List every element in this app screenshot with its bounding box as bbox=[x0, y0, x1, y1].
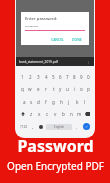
button[interactable]: i bbox=[71, 84, 78, 93]
staticText: h bbox=[60, 99, 63, 105]
staticText: Open Encrypted PDF bbox=[7, 159, 104, 173]
button[interactable]: a bbox=[21, 97, 28, 106]
staticText: m bbox=[77, 111, 82, 117]
staticText: 5 bbox=[52, 74, 55, 80]
staticText: l bbox=[84, 99, 86, 105]
staticText: Enter password: bbox=[25, 16, 58, 22]
button[interactable]: . bbox=[73, 122, 81, 131]
staticText: 9 bbox=[80, 74, 83, 80]
staticText: ?123 bbox=[20, 124, 28, 129]
button[interactable]: 8 bbox=[71, 72, 78, 81]
button[interactable]: n bbox=[67, 109, 75, 118]
button[interactable]: DONE bbox=[70, 36, 84, 43]
button[interactable]: Backspace bbox=[83, 109, 92, 118]
button[interactable]: More options bbox=[85, 59, 91, 65]
staticText: , bbox=[32, 124, 34, 130]
button[interactable]: 0 bbox=[85, 72, 92, 81]
staticText: 3 bbox=[37, 74, 40, 80]
button[interactable]: f bbox=[42, 97, 49, 106]
staticText: f bbox=[45, 99, 47, 105]
button[interactable]: CANCEL bbox=[49, 36, 66, 43]
button[interactable]: 4 bbox=[42, 72, 50, 81]
button[interactable]: 1 bbox=[18, 72, 26, 81]
staticText: x bbox=[38, 111, 41, 117]
staticText: e bbox=[37, 86, 40, 92]
staticText: 7 bbox=[66, 74, 69, 80]
button[interactable]: o bbox=[78, 84, 85, 93]
button[interactable]: v bbox=[51, 109, 59, 118]
button[interactable]: w bbox=[26, 84, 34, 93]
staticText: b bbox=[62, 111, 65, 117]
button[interactable]: z bbox=[27, 109, 35, 118]
button[interactable]: s bbox=[28, 97, 35, 106]
button[interactable]: 6 bbox=[57, 72, 64, 81]
staticText: 4 bbox=[45, 74, 48, 80]
staticText: CANCEL bbox=[51, 37, 64, 42]
button[interactable]: 9 bbox=[78, 72, 85, 81]
button[interactable]: Enter bbox=[81, 122, 92, 131]
staticText: 6 bbox=[59, 74, 62, 80]
button[interactable]: d bbox=[35, 97, 42, 106]
staticText: c bbox=[46, 111, 49, 117]
staticText: u bbox=[66, 86, 69, 92]
button[interactable]: t bbox=[50, 84, 57, 93]
staticText: a bbox=[23, 99, 26, 105]
staticText: . bbox=[76, 124, 78, 130]
button[interactable]: q bbox=[18, 84, 26, 93]
button[interactable]: b bbox=[59, 109, 67, 118]
staticText: d bbox=[37, 99, 40, 105]
button[interactable]: c bbox=[43, 109, 51, 118]
button[interactable]: l bbox=[81, 97, 89, 106]
button[interactable]: 7 bbox=[64, 72, 71, 81]
staticText: q bbox=[21, 86, 24, 92]
staticText: r bbox=[45, 86, 47, 92]
staticText: k bbox=[76, 99, 79, 105]
button[interactable]: e bbox=[34, 84, 42, 93]
staticText: p bbox=[87, 86, 90, 92]
staticText: 2 bbox=[29, 74, 32, 80]
button[interactable]: h bbox=[57, 97, 65, 106]
staticText: s bbox=[30, 99, 33, 105]
staticText: English bbox=[54, 125, 65, 129]
button[interactable]: 2 bbox=[26, 72, 34, 81]
button[interactable]: Shift bbox=[18, 109, 27, 118]
staticText: v bbox=[54, 111, 57, 117]
button[interactable]: , bbox=[29, 122, 37, 131]
staticText: i bbox=[74, 86, 76, 92]
button[interactable]: m bbox=[75, 109, 83, 118]
staticText: 8 bbox=[73, 74, 76, 80]
button[interactable]: j bbox=[65, 97, 73, 106]
staticText: Password bbox=[17, 135, 94, 157]
button[interactable]: 3 bbox=[34, 72, 42, 81]
staticText: g bbox=[52, 99, 55, 105]
button[interactable]: ?123 bbox=[18, 122, 29, 131]
staticText: 0 bbox=[87, 74, 90, 80]
staticText: w bbox=[28, 86, 32, 92]
button[interactable]: English bbox=[46, 124, 72, 130]
button[interactable]: p bbox=[85, 84, 92, 93]
staticText: j bbox=[68, 99, 70, 105]
button[interactable]: x bbox=[35, 109, 43, 118]
button[interactable]: u bbox=[64, 84, 71, 93]
staticText: bank_statement_2019.pdf bbox=[19, 60, 85, 64]
staticText: o bbox=[80, 86, 83, 92]
staticText: DONE bbox=[72, 37, 82, 42]
staticText: y bbox=[59, 86, 62, 92]
button[interactable]: r bbox=[42, 84, 50, 93]
staticText: z bbox=[30, 111, 33, 117]
staticText: ••••••••••• bbox=[25, 25, 39, 29]
staticText: t bbox=[53, 86, 55, 92]
staticText: n bbox=[70, 111, 73, 117]
staticText: 1 bbox=[21, 74, 24, 80]
button[interactable]: y bbox=[57, 84, 64, 93]
button[interactable]: g bbox=[49, 97, 57, 106]
button[interactable]: 5 bbox=[50, 72, 57, 81]
button[interactable]: k bbox=[73, 97, 81, 106]
button[interactable]: Emoji bbox=[37, 122, 45, 131]
